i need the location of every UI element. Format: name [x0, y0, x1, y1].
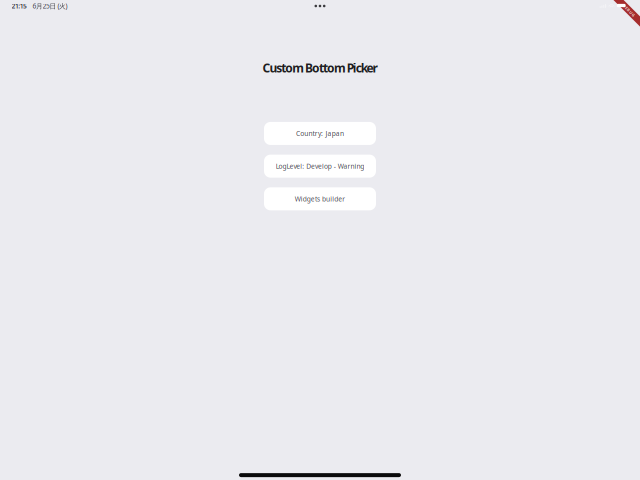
staticText: 6月25日 (火) — [33, 2, 68, 10]
staticText: 21:15 — [11, 2, 27, 10]
staticText: Country: Japan — [296, 129, 344, 138]
staticText: Custom Bottom Picker — [262, 60, 378, 76]
staticText: LogLevel: Develop - Warning — [276, 162, 364, 171]
staticText: DEBUG — [621, 8, 637, 13]
button[interactable]: LogLevel: Develop - Warning — [264, 155, 376, 178]
button[interactable]: Country: Japan — [264, 122, 376, 145]
button[interactable]: Widgets builder — [264, 187, 376, 210]
staticText: Widgets builder — [295, 194, 345, 203]
